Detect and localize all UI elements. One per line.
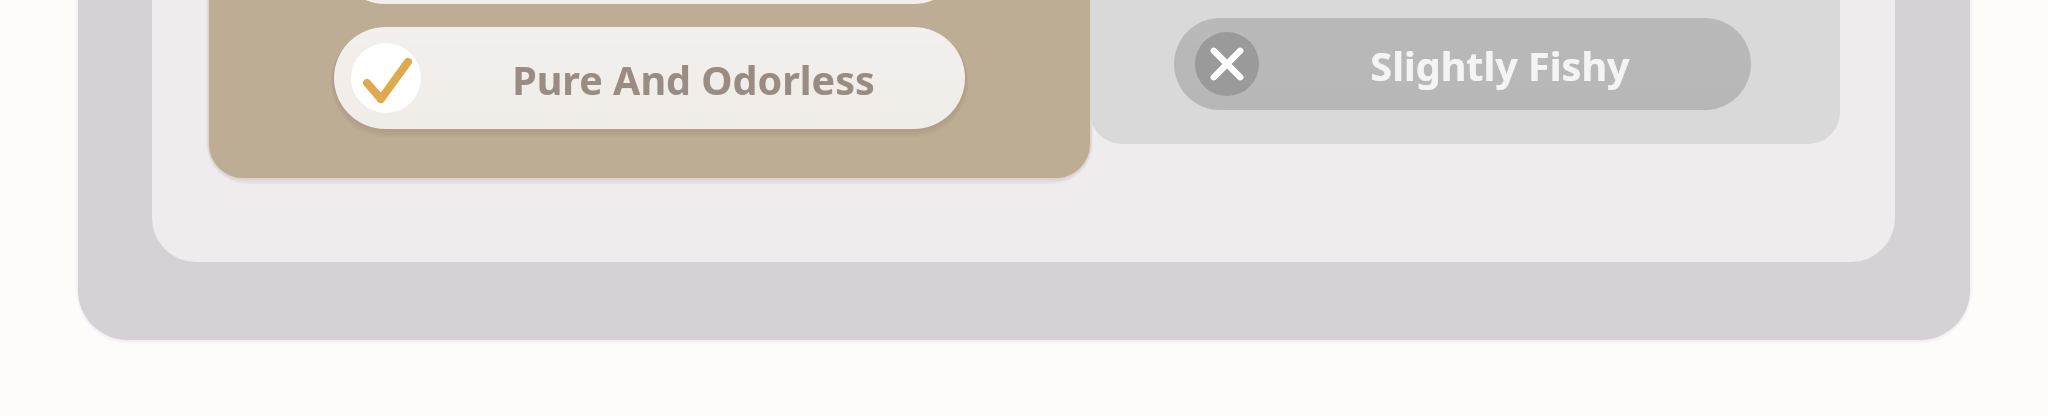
button[interactable]: Previous option bbox=[334, 0, 965, 4]
button[interactable]: Pure And Odorless bbox=[334, 27, 965, 129]
staticText: Slightly Fishy bbox=[1370, 39, 1630, 93]
button[interactable]: Slightly Fishy bbox=[1174, 18, 1751, 110]
staticText: Pure And Odorless bbox=[512, 53, 875, 107]
